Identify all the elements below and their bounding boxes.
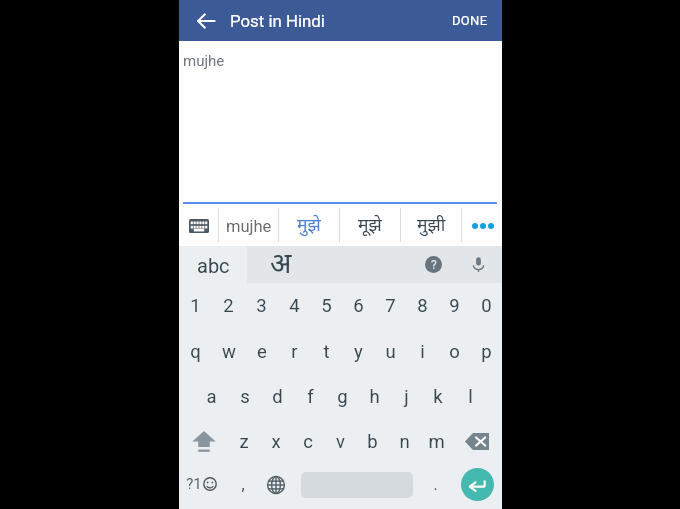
- button[interactable]: q: [179, 329, 212, 374]
- button[interactable]: 9: [438, 283, 470, 329]
- button[interactable]: Enter: [453, 462, 502, 507]
- staticText: 7: [385, 295, 396, 317]
- button[interactable]: k: [422, 374, 454, 419]
- staticText: i: [420, 341, 425, 363]
- button[interactable]: e: [245, 329, 278, 374]
- button[interactable]: v: [324, 419, 356, 464]
- staticText: t: [323, 341, 330, 363]
- button[interactable]: z: [228, 419, 260, 464]
- staticText: m: [428, 431, 445, 453]
- button[interactable]: Help: [414, 246, 452, 283]
- staticText: h: [369, 386, 380, 408]
- button[interactable]: Change language: [261, 462, 297, 507]
- staticText: 0: [481, 295, 492, 317]
- button[interactable]: Symbols and emoji: [179, 462, 225, 507]
- staticText: ?1: [186, 475, 202, 493]
- staticText: j: [404, 386, 409, 408]
- button[interactable]: More suggestions: [462, 204, 502, 246]
- staticText: u: [385, 341, 396, 363]
- staticText: l: [468, 386, 473, 408]
- button[interactable]: Back: [189, 4, 223, 38]
- button[interactable]: 0: [470, 283, 502, 329]
- staticText: 8: [417, 295, 428, 317]
- button[interactable]: s: [228, 374, 261, 419]
- staticText: मुझी: [417, 215, 446, 238]
- staticText: o: [449, 341, 460, 363]
- staticText: मुझे: [297, 215, 321, 238]
- button[interactable]: 5: [310, 283, 342, 329]
- staticText: 2: [223, 295, 234, 317]
- button[interactable]: 8: [406, 283, 438, 329]
- staticText: y: [354, 341, 363, 363]
- button[interactable]: i: [406, 329, 438, 374]
- staticText: DONE: [452, 13, 488, 28]
- staticText: 9: [449, 295, 460, 317]
- staticText: q: [190, 341, 201, 363]
- button[interactable]: c: [292, 419, 324, 464]
- staticText: ?: [431, 258, 437, 272]
- staticText: 4: [289, 295, 300, 317]
- button[interactable]: x: [260, 419, 292, 464]
- staticText: k: [433, 386, 443, 408]
- staticText: p: [481, 341, 492, 363]
- button[interactable]: o: [438, 329, 470, 374]
- staticText: .: [433, 475, 438, 494]
- button[interactable]: y: [342, 329, 374, 374]
- button[interactable]: 6: [342, 283, 374, 329]
- button[interactable]: u: [374, 329, 406, 374]
- staticText: abc: [197, 254, 230, 277]
- staticText: अ: [270, 248, 292, 285]
- staticText: 5: [321, 295, 332, 317]
- button[interactable]: 2: [212, 283, 245, 329]
- button[interactable]: Keyboard settings: [179, 204, 218, 246]
- button[interactable]: DONE: [440, 5, 502, 36]
- staticText: f: [307, 386, 314, 408]
- button[interactable]: Backspace: [452, 419, 502, 464]
- staticText: 1: [190, 295, 201, 317]
- button[interactable]: b: [356, 419, 388, 464]
- button[interactable]: Space: [297, 462, 417, 507]
- button[interactable]: मूझे: [340, 204, 400, 246]
- staticText: n: [399, 431, 410, 453]
- button[interactable]: Shift: [179, 419, 228, 464]
- button[interactable]: मुझी: [401, 204, 461, 246]
- staticText: mujhe: [183, 52, 225, 70]
- button[interactable]: 1: [179, 283, 212, 329]
- button[interactable]: 4: [278, 283, 310, 329]
- button[interactable]: m: [420, 419, 452, 464]
- button[interactable]: w: [212, 329, 245, 374]
- button[interactable]: n: [388, 419, 420, 464]
- button[interactable]: abc: [179, 246, 247, 283]
- button[interactable]: a: [195, 374, 228, 419]
- button[interactable]: अ: [247, 246, 357, 283]
- staticText: c: [303, 431, 313, 453]
- button[interactable]: g: [326, 374, 358, 419]
- button[interactable]: d: [261, 374, 294, 419]
- staticText: mujhe: [226, 217, 272, 236]
- button[interactable]: .: [417, 462, 453, 507]
- staticText: v: [336, 431, 345, 453]
- staticText: b: [367, 431, 378, 453]
- button[interactable]: j: [390, 374, 422, 419]
- button[interactable]: p: [470, 329, 502, 374]
- button[interactable]: h: [358, 374, 390, 419]
- staticText: मूझे: [358, 215, 382, 238]
- button[interactable]: f: [294, 374, 326, 419]
- button[interactable]: मुझे: [279, 204, 339, 246]
- button[interactable]: Voice input: [459, 246, 497, 283]
- staticText: g: [337, 386, 348, 408]
- button[interactable]: 3: [245, 283, 278, 329]
- button[interactable]: ,: [225, 462, 261, 507]
- button[interactable]: mujhe: [219, 204, 278, 246]
- staticText: ,: [241, 475, 245, 494]
- staticText: d: [272, 386, 283, 408]
- button[interactable]: l: [454, 374, 486, 419]
- staticText: w: [222, 341, 236, 363]
- button[interactable]: t: [310, 329, 342, 374]
- staticText: 3: [256, 295, 267, 317]
- staticText: Post in Hindi: [230, 11, 325, 31]
- staticText: e: [257, 341, 267, 363]
- button[interactable]: r: [278, 329, 310, 374]
- staticText: z: [239, 431, 249, 453]
- button[interactable]: 7: [374, 283, 406, 329]
